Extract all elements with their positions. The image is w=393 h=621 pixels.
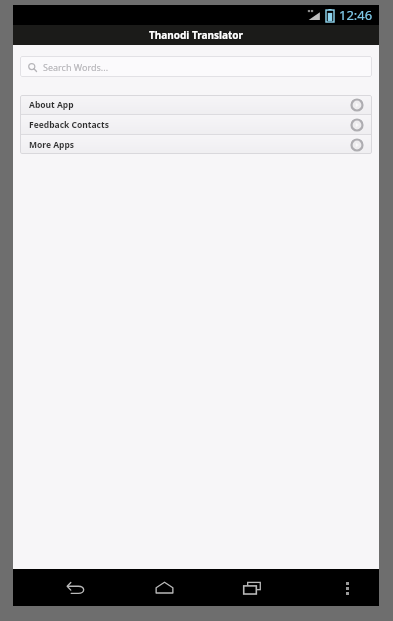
staticText: More Apps (29, 139, 351, 151)
button[interactable]: Feedback Contacts (20, 115, 372, 134)
staticText: Thanodi Translator (149, 28, 243, 42)
button[interactable]: More options (332, 573, 362, 603)
staticText: Feedback Contacts (29, 119, 351, 131)
button[interactable]: About App (20, 95, 372, 114)
button[interactable]: Recent apps (232, 569, 272, 606)
staticText: About App (29, 99, 351, 111)
staticText: Search Words... (43, 61, 109, 73)
button[interactable]: Home (144, 569, 184, 606)
button[interactable]: More Apps (20, 135, 372, 154)
button[interactable]: Back (56, 569, 96, 606)
button[interactable]: Search Words... (20, 56, 372, 77)
staticText: 12:46 (339, 6, 373, 24)
